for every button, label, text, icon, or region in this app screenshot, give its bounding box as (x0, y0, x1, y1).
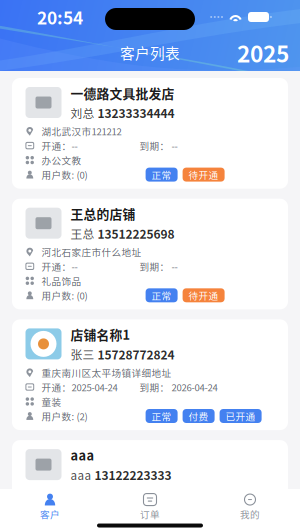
staticText: 一德路文具批发店 (70, 83, 174, 102)
staticText: 重庆南川区太平场镇详细地址 (42, 365, 172, 379)
staticText: 王总的店铺 (70, 204, 135, 223)
staticText: 15728772824 (97, 345, 174, 363)
staticText: 待开通 (189, 168, 219, 181)
staticText: 到期： 2026-04-24 (140, 380, 218, 394)
button[interactable]: aaa (12, 440, 288, 530)
staticText: 店铺名称1 (70, 325, 130, 343)
staticText: 到期： -- (140, 139, 178, 152)
button[interactable]: 订单 (100, 493, 200, 521)
staticText: 到期： -- (140, 259, 178, 273)
staticText: 客户 (40, 507, 60, 521)
staticText: 正常 (152, 288, 172, 302)
button[interactable]: 一德路文具批发店 (12, 78, 288, 189)
staticText: 刘总 (70, 104, 94, 121)
staticText: 湖北武汉市121212 (42, 124, 122, 138)
staticText: 待开通 (189, 288, 219, 302)
staticText: 订单 (140, 507, 160, 521)
staticText: 河北石家庄市aa (42, 486, 112, 500)
staticText: 开通：2025-04-24 (42, 380, 118, 394)
staticText: 张三 (70, 346, 94, 363)
staticText: 开通：-- (42, 259, 78, 273)
staticText: 开通：-- (42, 501, 78, 515)
staticText: 13122223333 (94, 466, 171, 484)
staticText: 用户数: (0) (42, 288, 88, 302)
staticText: 礼品饰品 (42, 274, 82, 288)
staticText: 正常 (152, 409, 172, 423)
staticText: 2025 (237, 36, 289, 69)
staticText: 用户数: (0) (42, 168, 88, 181)
staticText: 到期： -- (140, 501, 178, 515)
staticText: 13233334444 (97, 104, 174, 121)
staticText: 20:54 (37, 4, 83, 30)
staticText: 王总 (70, 225, 94, 242)
button[interactable]: 店铺名称1 (12, 319, 288, 430)
staticText: aaa (70, 446, 94, 464)
staticText: 其他 (42, 515, 62, 529)
staticText: 童装 (42, 394, 62, 408)
staticText: 用户数: (2) (42, 409, 88, 423)
staticText: 我的 (240, 507, 260, 521)
staticText: 开通：-- (42, 139, 78, 152)
staticText: 正常 (152, 168, 172, 181)
staticText: 13512225698 (97, 225, 174, 242)
staticText: 客户列表 (120, 42, 180, 63)
staticText: aaa (70, 466, 91, 483)
staticText: 付费 (189, 409, 209, 423)
staticText: 已开通 (226, 409, 256, 423)
staticText: 河北石家庄市什么地址 (42, 245, 142, 259)
staticText: 办公文教 (42, 153, 82, 167)
button[interactable]: 我的 (200, 493, 300, 521)
button[interactable]: 客户 (0, 493, 100, 521)
button[interactable]: 王总的店铺 (12, 199, 288, 309)
